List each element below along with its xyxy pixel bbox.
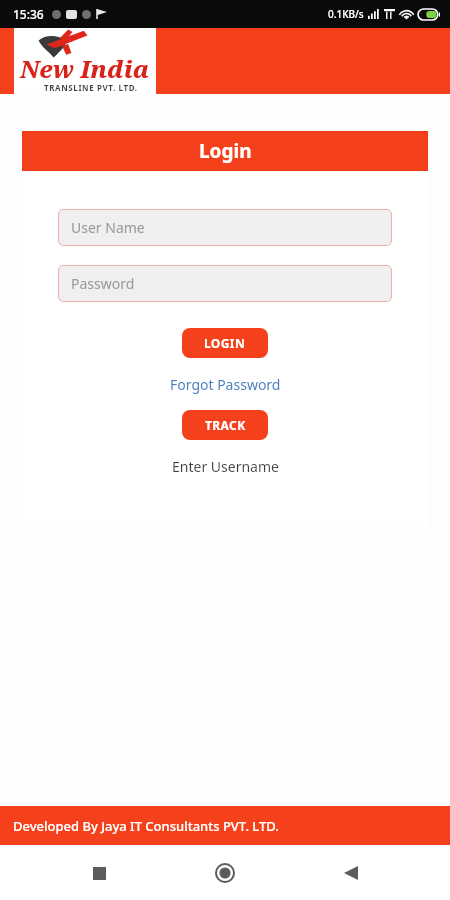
button[interactable]: LOGIN bbox=[182, 328, 268, 358]
staticText: Enter Username bbox=[172, 457, 279, 476]
staticText: 15:36 bbox=[13, 6, 44, 22]
staticText: New India bbox=[20, 52, 150, 85]
staticText: Developed By Jaya IT Consultants PVT. LT… bbox=[13, 817, 279, 835]
staticText: 0.1KB/s bbox=[328, 7, 364, 21]
button[interactable]: Forgot Password bbox=[170, 375, 281, 394]
staticText: User Name bbox=[71, 218, 145, 237]
button[interactable]: Home bbox=[198, 846, 252, 900]
staticText: TRACK bbox=[205, 417, 246, 433]
staticText: Login bbox=[199, 138, 252, 164]
button[interactable]: User Name bbox=[58, 209, 392, 246]
button[interactable]: TRACK bbox=[182, 410, 268, 440]
button[interactable]: Back bbox=[324, 846, 378, 900]
staticText: TRANSLINE PVT. LTD. bbox=[44, 82, 138, 93]
staticText: LOGIN bbox=[204, 335, 246, 351]
staticText: Forgot Password bbox=[170, 375, 281, 394]
button[interactable]: Password bbox=[58, 265, 392, 302]
staticText: Password bbox=[71, 274, 135, 293]
button[interactable]: Recent apps bbox=[72, 846, 126, 900]
